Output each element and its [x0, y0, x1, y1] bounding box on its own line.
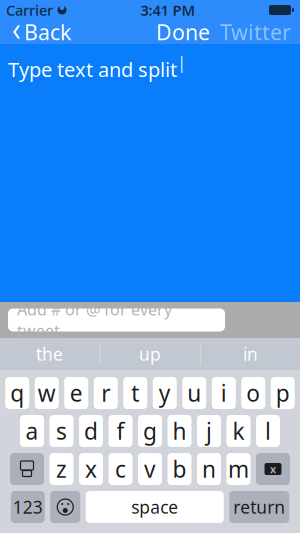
- staticText: return: [233, 495, 285, 518]
- button[interactable]: up: [100, 338, 200, 370]
- button[interactable]: Shift: [10, 453, 44, 485]
- button[interactable]: a: [20, 415, 44, 447]
- button[interactable]: g: [138, 415, 162, 447]
- staticText: 3:41 PM: [140, 0, 195, 20]
- staticText: q: [10, 378, 24, 408]
- button[interactable]: Add # or @ for every tweet: [8, 308, 225, 331]
- staticText: o: [246, 378, 260, 408]
- button[interactable]: l: [256, 415, 280, 447]
- staticText: i: [221, 378, 227, 408]
- staticText: u: [187, 378, 201, 408]
- staticText: l: [265, 416, 271, 446]
- button[interactable]: Done: [151, 20, 215, 44]
- staticText: Twitter: [220, 18, 291, 46]
- button[interactable]: u: [182, 377, 206, 409]
- button[interactable]: f: [108, 415, 132, 447]
- button[interactable]: n: [197, 453, 221, 485]
- staticText: w: [38, 378, 56, 408]
- button[interactable]: v: [138, 453, 162, 485]
- button[interactable]: q: [5, 377, 29, 409]
- staticText: b: [172, 454, 186, 484]
- button[interactable]: s: [49, 415, 73, 447]
- button[interactable]: space: [86, 491, 224, 523]
- staticText: up: [139, 342, 161, 365]
- staticText: Carrier: [6, 0, 53, 20]
- staticText: p: [276, 378, 290, 408]
- button[interactable]: Delete: [256, 453, 290, 485]
- staticText: n: [202, 454, 216, 484]
- staticText: d: [84, 416, 98, 446]
- staticText: a: [25, 416, 38, 446]
- staticText: v: [144, 454, 156, 484]
- staticText: m: [228, 454, 249, 484]
- button[interactable]: h: [167, 415, 191, 447]
- staticText: Back: [24, 18, 71, 46]
- staticText: e: [70, 378, 83, 408]
- staticText: x: [270, 462, 276, 476]
- button[interactable]: Emoji: [50, 491, 80, 523]
- staticText: space: [131, 495, 178, 518]
- button[interactable]: k: [226, 415, 250, 447]
- button[interactable]: c: [108, 453, 132, 485]
- button[interactable]: z: [49, 453, 73, 485]
- staticText: f: [116, 416, 124, 446]
- staticText: Add # or @ for every tweet: [17, 299, 172, 341]
- button[interactable]: Back: [4, 20, 79, 44]
- button[interactable]: i: [212, 377, 236, 409]
- button[interactable]: x: [79, 453, 103, 485]
- button[interactable]: o: [241, 377, 265, 409]
- staticText: g: [143, 416, 157, 446]
- staticText: c: [115, 454, 126, 484]
- staticText: z: [56, 454, 67, 484]
- staticText: 123: [13, 495, 43, 518]
- button[interactable]: 123: [11, 491, 45, 523]
- staticText: t: [131, 378, 139, 408]
- button[interactable]: the: [0, 338, 99, 370]
- button[interactable]: return: [229, 491, 289, 523]
- staticText: y: [159, 378, 171, 408]
- button[interactable]: y: [153, 377, 177, 409]
- button[interactable]: w: [35, 377, 59, 409]
- button[interactable]: j: [197, 415, 221, 447]
- staticText: h: [172, 416, 186, 446]
- button[interactable]: b: [167, 453, 191, 485]
- staticText: x: [85, 454, 97, 484]
- button[interactable]: d: [79, 415, 103, 447]
- staticText: Type text and split: [8, 56, 177, 83]
- staticText: the: [36, 342, 63, 365]
- staticText: s: [56, 416, 67, 446]
- staticText: k: [232, 416, 244, 446]
- staticText: r: [101, 378, 110, 408]
- button[interactable]: Twitter: [215, 20, 296, 44]
- staticText: in: [243, 342, 258, 365]
- staticText: Done: [156, 18, 210, 46]
- button[interactable]: p: [271, 377, 295, 409]
- button[interactable]: m: [226, 453, 250, 485]
- staticText: j: [206, 416, 212, 446]
- button[interactable]: r: [94, 377, 118, 409]
- button[interactable]: e: [64, 377, 88, 409]
- button[interactable]: t: [123, 377, 147, 409]
- button[interactable]: in: [201, 338, 300, 370]
